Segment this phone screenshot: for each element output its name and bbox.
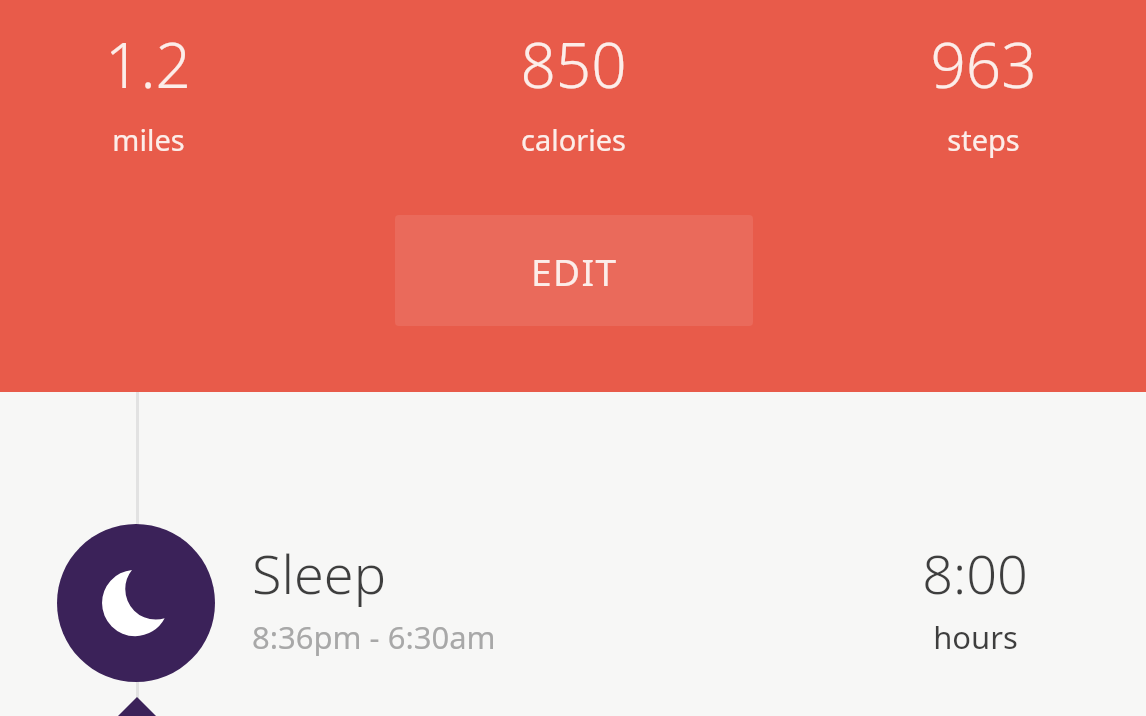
- staticText: 850: [520, 22, 627, 106]
- staticText: Sleep: [252, 536, 386, 610]
- staticText: steps: [947, 120, 1020, 159]
- staticText: calories: [521, 120, 626, 159]
- staticText: hours: [933, 616, 1018, 658]
- button[interactable]: EDIT: [395, 215, 753, 326]
- staticText: 8:00: [922, 536, 1028, 610]
- other: Sleep: [57, 524, 215, 682]
- staticText: 963: [930, 22, 1037, 106]
- staticText: EDIT: [531, 246, 618, 296]
- button[interactable]: Sleep: [0, 500, 1146, 705]
- staticText: 8:36pm - 6:30am: [252, 616, 496, 658]
- staticText: miles: [112, 120, 185, 159]
- staticText: 1.2: [105, 22, 191, 106]
